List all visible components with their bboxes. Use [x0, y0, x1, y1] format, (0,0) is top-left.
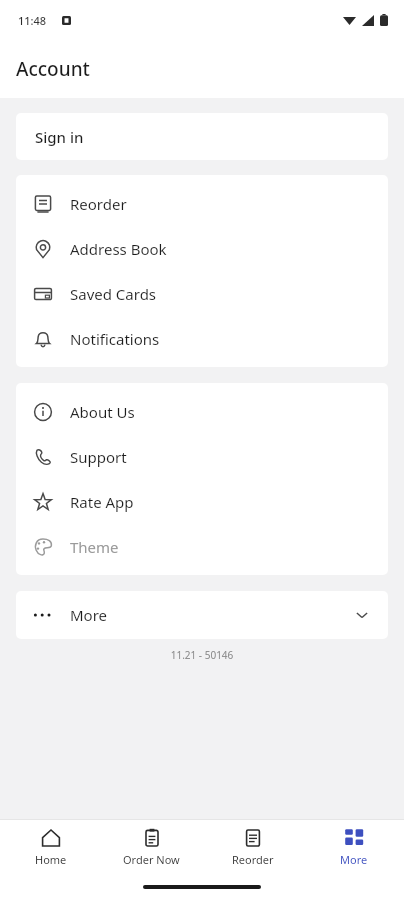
button[interactable]: More	[16, 591, 388, 639]
button[interactable]: Support	[16, 434, 388, 479]
staticText: Rate App	[70, 492, 134, 512]
button[interactable]: Rate App	[16, 479, 388, 524]
staticText: 11:48	[18, 13, 47, 28]
button[interactable]: Sign in	[16, 113, 388, 160]
staticText: Account	[16, 56, 90, 82]
staticText: About Us	[70, 402, 135, 422]
button[interactable]: About Us	[16, 389, 388, 434]
staticText: Reorder	[232, 852, 274, 867]
button[interactable]: Reorder	[16, 181, 388, 226]
button[interactable]: Home	[0, 820, 101, 874]
button[interactable]: Notifications	[16, 316, 388, 361]
staticText: More	[340, 852, 368, 867]
staticText: Support	[70, 447, 127, 467]
staticText: Saved Cards	[70, 284, 157, 304]
staticText: Order Now	[123, 852, 180, 867]
button[interactable]: Order Now	[101, 820, 202, 874]
staticText: Home	[35, 852, 67, 867]
button[interactable]: Saved Cards	[16, 271, 388, 316]
button[interactable]: Theme	[16, 524, 388, 569]
button[interactable]: Address Book	[16, 226, 388, 271]
button[interactable]: More	[303, 820, 404, 874]
staticText: 11.21 - 50146	[0, 648, 404, 662]
staticText: Address Book	[70, 239, 167, 259]
staticText: Reorder	[70, 194, 127, 214]
staticText: Sign in	[35, 127, 84, 147]
staticText: More	[70, 605, 108, 625]
button[interactable]: Reorder	[202, 820, 303, 874]
staticText: Notifications	[70, 329, 160, 349]
staticText: Theme	[70, 537, 119, 557]
